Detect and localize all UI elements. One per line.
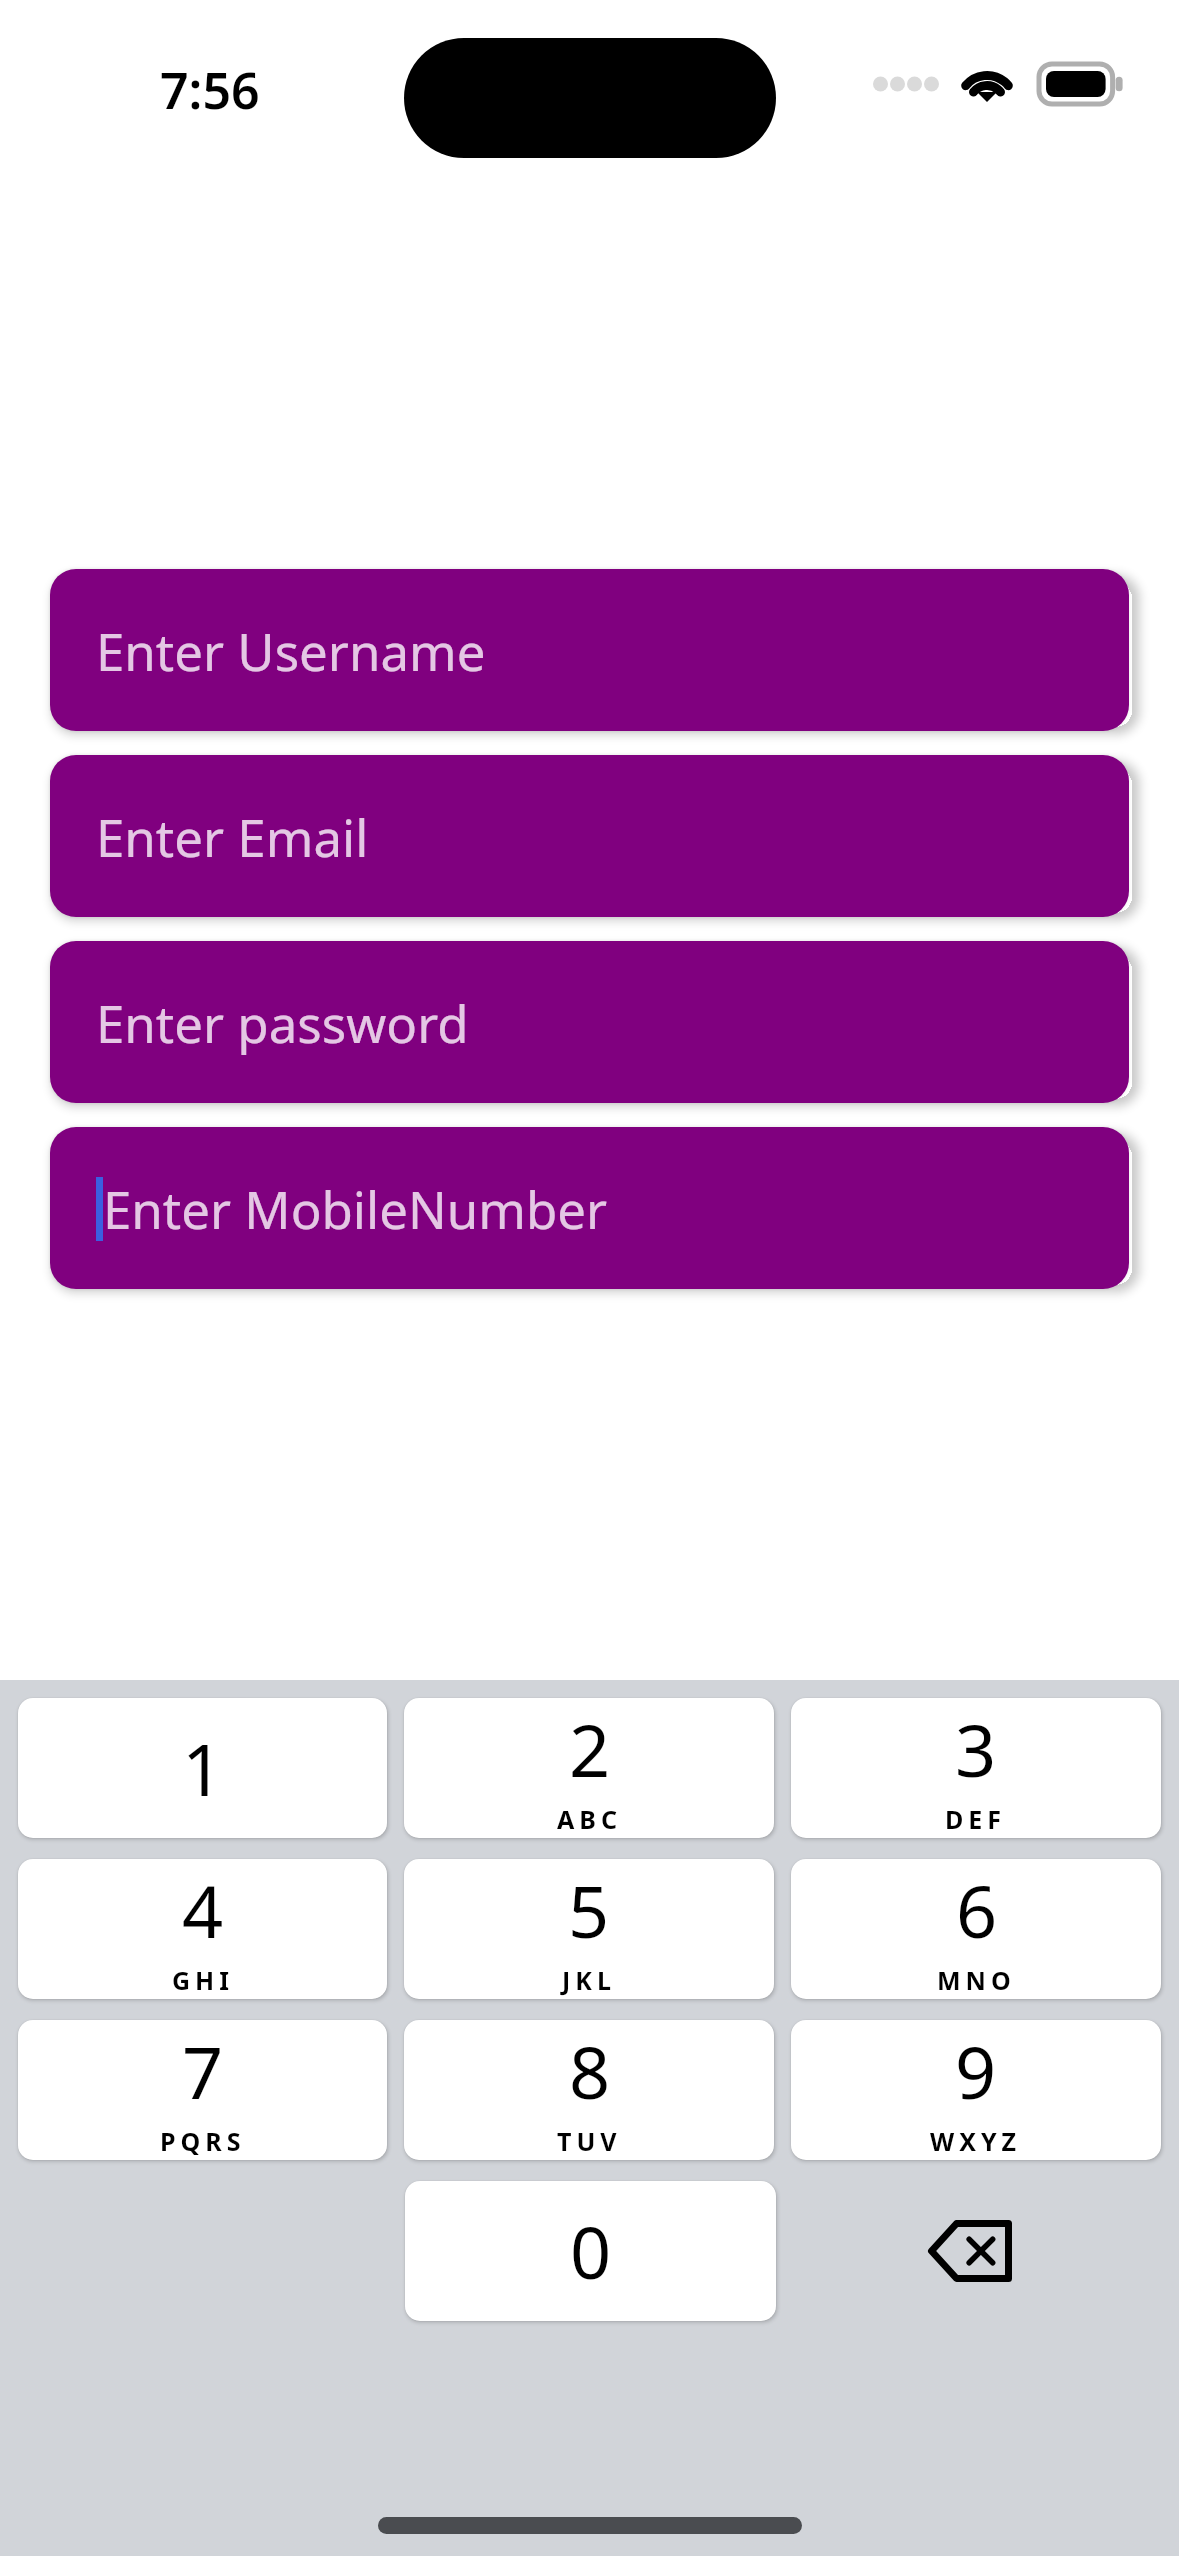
staticText: GHI <box>172 1963 234 1997</box>
staticText: Enter Email <box>96 802 369 871</box>
button[interactable]: 8 <box>404 2020 774 2160</box>
button[interactable]: 7 <box>18 2020 387 2160</box>
staticText: MNO <box>937 1963 1016 1997</box>
staticText: 4 <box>182 1861 224 1959</box>
button[interactable]: Backspace <box>776 2181 1163 2321</box>
button[interactable]: 5 <box>404 1859 774 1999</box>
staticText: PQRS <box>160 2124 246 2158</box>
staticText: 7 <box>182 2022 224 2120</box>
staticText: 5 <box>568 1861 610 1959</box>
button[interactable]: 9 <box>791 2020 1161 2160</box>
button[interactable]: 4 <box>18 1859 387 1999</box>
staticText: ABC <box>557 1802 622 1836</box>
staticText: TUV <box>557 2124 622 2158</box>
staticText: 8 <box>569 2022 611 2120</box>
staticText: 3 <box>955 1700 997 1798</box>
button[interactable]: Enter Email <box>50 755 1129 917</box>
staticText: 9 <box>955 2022 997 2120</box>
button[interactable]: 3 <box>791 1698 1161 1838</box>
staticText: WXYZ <box>930 2124 1022 2158</box>
staticText: 6 <box>956 1861 998 1959</box>
staticText: Enter Username <box>96 616 486 685</box>
staticText: 1 <box>182 1719 224 1817</box>
staticText: JKL <box>562 1963 616 1997</box>
button[interactable]: 6 <box>791 1859 1161 1999</box>
staticText: DEF <box>945 1802 1007 1836</box>
staticText: Enter MobileNumber <box>103 1174 608 1243</box>
staticText: 7:56 <box>160 56 260 124</box>
button[interactable]: Enter Username <box>50 569 1129 731</box>
staticText: Enter password <box>96 988 469 1057</box>
button[interactable]: 0 <box>405 2181 776 2321</box>
button[interactable]: 1 <box>18 1698 387 1838</box>
staticText: 2 <box>569 1700 611 1798</box>
staticText: 0 <box>570 2202 612 2300</box>
button[interactable]: 2 <box>404 1698 774 1838</box>
button[interactable]: Enter MobileNumber <box>50 1127 1129 1289</box>
button[interactable]: Enter password <box>50 941 1129 1103</box>
